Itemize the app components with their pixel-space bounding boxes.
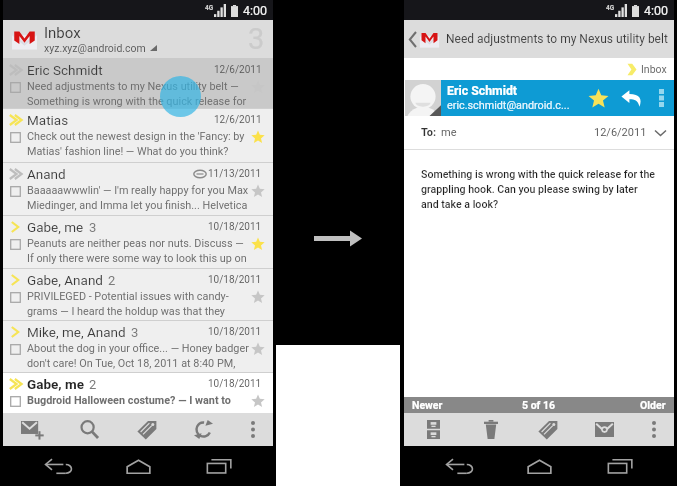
staticText: Eric Schmidt (447, 84, 518, 98)
button[interactable]: Refresh (175, 413, 232, 446)
button[interactable]: Star (245, 290, 273, 310)
staticText: Bugdroid Halloween costume? — I want to (27, 394, 231, 407)
staticText: Mike, me, Anand (27, 324, 126, 340)
button[interactable]: Compose (3, 413, 61, 446)
staticText: 2 (89, 377, 97, 392)
staticText: 4G (205, 4, 214, 12)
staticText: Gabe, Anand (27, 272, 103, 288)
staticText: Gabe, me (27, 219, 84, 235)
staticText: Something is wrong with the quick releas… (421, 168, 655, 180)
staticText: Anand (27, 166, 66, 182)
button[interactable]: Recents (594, 450, 646, 482)
staticText: 2 (108, 273, 116, 288)
staticText: Something is wrong with the quick releas… (27, 95, 247, 108)
staticText: 10/18/2011 (208, 274, 262, 286)
button[interactable]: Anand (3, 162, 273, 215)
staticText: Matias' fashion line! — What do you thin… (27, 145, 229, 158)
staticText: xyz.xyz@android.com (44, 42, 146, 54)
button[interactable]: Star (245, 130, 273, 150)
staticText: Need adjustments to my Nexus utility bel… (446, 32, 668, 46)
button[interactable]: Star (582, 80, 614, 116)
staticText: Eric Schmidt (27, 62, 103, 78)
button[interactable]: Back (433, 450, 485, 482)
button[interactable]: Eric Schmidt (3, 58, 273, 108)
button[interactable]: Mike, me, Anand (3, 320, 273, 372)
button[interactable]: Inbox (404, 58, 667, 80)
staticText: Newer (412, 399, 443, 411)
staticText: Baaaaawwwlin' — I'm really happy for you… (27, 184, 249, 197)
staticText: 12/6/2011 (594, 126, 647, 139)
staticText: PRIVILEGED - Potential issues with candy… (27, 290, 229, 303)
staticText: don't care! On Tue, Oct 18, 2011 at 8:40… (27, 357, 236, 370)
button[interactable]: Need adjustments to my Nexus utility bel… (404, 20, 674, 58)
button[interactable]: Star (245, 394, 273, 413)
button[interactable]: Newer (404, 397, 522, 413)
staticText: 10/18/2011 (208, 378, 262, 390)
button[interactable]: More options (633, 413, 674, 446)
button[interactable]: Gabe, me (3, 372, 273, 413)
button[interactable]: Delete (462, 413, 519, 446)
button[interactable]: Home (112, 450, 164, 482)
button[interactable]: Matias (3, 108, 273, 162)
staticText: 3 (248, 22, 265, 56)
button[interactable]: Gabe, Anand (3, 268, 273, 320)
staticText: eric.schmidt@android.c... (447, 99, 570, 112)
staticText: Gabe, me (27, 376, 84, 392)
button[interactable]: Labels (118, 413, 175, 446)
button[interactable]: To: (404, 116, 674, 149)
staticText: me (441, 126, 457, 139)
button[interactable]: Archive (404, 413, 462, 446)
button[interactable]: More options (648, 80, 674, 116)
button[interactable]: Back (32, 450, 84, 482)
staticText: 3 (131, 325, 139, 340)
button[interactable]: Reply (614, 80, 648, 116)
staticText: To: (421, 126, 437, 139)
button[interactable]: Star (245, 80, 273, 100)
staticText: 5 of 16 (522, 399, 556, 411)
staticText: About the dog in your office... — Honey … (27, 342, 249, 355)
button[interactable]: Recents (193, 450, 245, 482)
staticText: If only there were some way to look this… (27, 252, 247, 265)
staticText: 3 (89, 220, 97, 235)
staticText: Need adjustments to my Nexus utility bel… (27, 80, 239, 93)
staticText: Matias (27, 112, 69, 128)
button[interactable]: Inbox (3, 20, 273, 58)
button[interactable]: Search (61, 413, 118, 446)
button[interactable]: Older (556, 397, 674, 413)
staticText: 4:00 (243, 3, 268, 18)
button[interactable]: Star (245, 237, 273, 257)
button[interactable]: Star (245, 342, 273, 362)
button[interactable]: Labels (519, 413, 576, 446)
staticText: 11/13/2011 (208, 168, 262, 180)
staticText: Inbox (44, 24, 81, 42)
staticText: Miedinger, and Imma let you finish... He… (27, 199, 248, 212)
staticText: 4:00 (644, 3, 669, 18)
staticText: Older (640, 399, 666, 411)
staticText: 4G (606, 4, 615, 12)
button[interactable]: Mark unread (576, 413, 633, 446)
staticText: 12/6/2011 (214, 114, 262, 126)
button[interactable]: Home (513, 450, 565, 482)
staticText: Peanuts are neither peas nor nuts. Discu… (27, 237, 244, 250)
staticText: 10/18/2011 (208, 326, 262, 338)
staticText: Inbox (641, 63, 667, 75)
staticText: 10/18/2011 (208, 221, 262, 233)
staticText: grams — I heard the holdup was that they (27, 305, 225, 318)
button[interactable]: More options (232, 413, 273, 446)
button[interactable]: Star (245, 184, 273, 204)
button[interactable]: Gabe, me (3, 215, 273, 268)
staticText: 12/6/2011 (214, 64, 262, 76)
staticText: and take a look? (421, 198, 499, 210)
staticText: grappling hook. Can you please swing by … (421, 183, 638, 195)
staticText: Check out the newest design in the 'Fanc… (27, 130, 245, 143)
